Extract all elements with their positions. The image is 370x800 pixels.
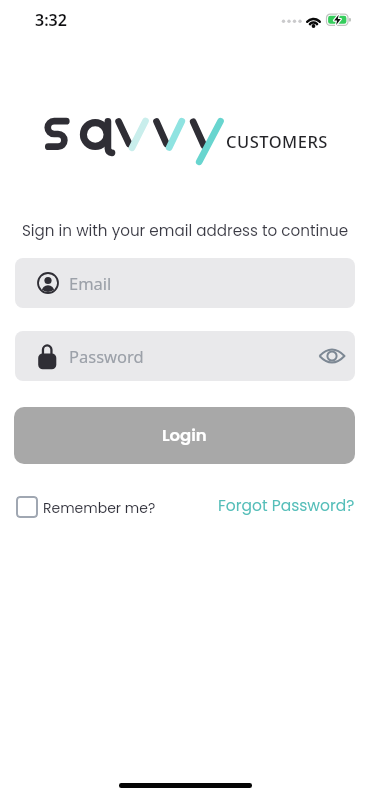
staticText: Sign in with your email address to conti… (0, 220, 370, 241)
staticText: Password (69, 345, 144, 367)
button[interactable] (16, 496, 38, 518)
button[interactable]: Login (14, 407, 355, 464)
button[interactable]: Forgot Password? (218, 495, 355, 517)
staticText: Email (69, 272, 112, 294)
button[interactable]: Password (15, 331, 355, 381)
button[interactable]: Email (15, 258, 355, 308)
staticText: Login (162, 424, 207, 447)
staticText: 3:32 (35, 9, 67, 31)
button[interactable]: Remember me? (43, 498, 156, 518)
button[interactable] (318, 346, 346, 366)
staticText: CUSTOMERS (226, 130, 328, 152)
